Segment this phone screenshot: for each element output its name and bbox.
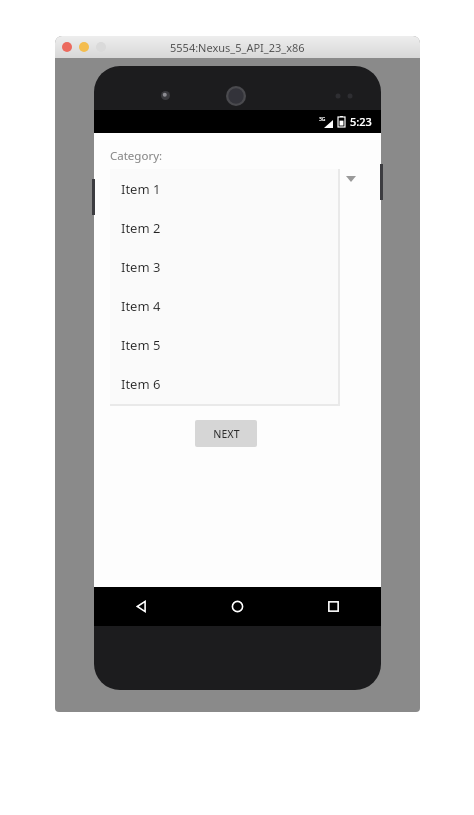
staticText: 5554:Nexus_5_API_23_x86 <box>170 40 305 55</box>
staticText: Item 2 <box>121 219 161 237</box>
button[interactable]: Item 4 <box>110 286 338 325</box>
staticText: Item 5 <box>121 336 161 354</box>
button[interactable]: Home <box>189 587 285 626</box>
button[interactable]: Window control <box>62 42 72 52</box>
staticText: Item 4 <box>121 297 161 315</box>
button[interactable]: Item 2 <box>110 208 338 247</box>
staticText: 3G <box>319 116 326 123</box>
button[interactable]: Item 1 <box>110 169 338 208</box>
button[interactable]: Window control <box>79 42 89 52</box>
staticText: Item 1 <box>121 180 161 198</box>
button[interactable]: NEXT <box>195 420 257 447</box>
button[interactable]: Window control <box>96 42 106 52</box>
button[interactable]: Item 6 <box>110 364 338 403</box>
staticText: NEXT <box>213 427 240 441</box>
button[interactable]: Item 5 <box>110 325 338 364</box>
staticText: Item 6 <box>121 375 161 393</box>
staticText: 5:23 <box>350 114 372 129</box>
staticText: Category: <box>110 148 163 164</box>
staticText: Item 3 <box>121 258 161 276</box>
button[interactable]: Recent apps <box>285 587 381 626</box>
button[interactable]: Back <box>94 587 189 626</box>
button[interactable]: Item 3 <box>110 247 338 286</box>
